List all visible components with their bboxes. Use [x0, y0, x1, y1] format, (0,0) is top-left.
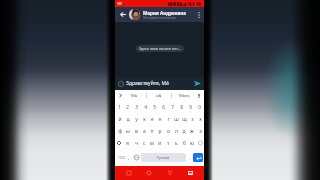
staticText: у: [135, 116, 138, 123]
button[interactable]: 9: [186, 101, 195, 113]
button[interactable]: Emoji: [117, 80, 124, 87]
staticText: й: [118, 116, 122, 123]
staticText: Последнее посещение: [143, 16, 176, 20]
staticText: м: [150, 140, 154, 147]
button[interactable]: я: [123, 137, 132, 149]
button[interactable]: з: [188, 113, 196, 125]
button[interactable]: 4: [141, 101, 150, 113]
staticText: 6: [162, 104, 165, 111]
button[interactable]: 3: [132, 101, 141, 113]
button[interactable]: 7: [168, 101, 177, 113]
button[interactable]: 0: [195, 101, 204, 113]
button[interactable]: Voice input: [196, 90, 202, 101]
staticText: з: [191, 116, 194, 123]
button[interactable]: 5: [150, 101, 159, 113]
staticText: я: [126, 140, 129, 147]
button[interactable]: ф: [115, 125, 124, 137]
button[interactable]: и: [156, 137, 164, 149]
button[interactable]: Ма: [123, 90, 146, 101]
staticText: а: [143, 128, 146, 135]
staticText: 2: [126, 104, 129, 111]
staticText: 4: [144, 104, 147, 111]
button[interactable]: 1: [115, 101, 123, 113]
button[interactable]: Send: [193, 79, 202, 88]
staticText: ы: [126, 128, 130, 135]
staticText: т: [167, 140, 170, 147]
button[interactable]: Shift: [115, 137, 123, 149]
button[interactable]: 6: [159, 101, 168, 113]
staticText: ф: [118, 128, 122, 135]
staticText: д: [182, 128, 186, 135]
button[interactable]: ж: [188, 125, 196, 137]
staticText: 7: [171, 104, 174, 111]
button[interactable]: Recent apps: [123, 167, 135, 179]
button[interactable]: о: [164, 125, 172, 137]
button[interactable]: иА: [147, 90, 171, 101]
button[interactable]: ц: [124, 113, 132, 125]
button[interactable]: п: [148, 125, 156, 137]
button[interactable]: ю: [188, 137, 196, 149]
staticText: ю: [190, 140, 194, 147]
button[interactable]: Enter: [193, 153, 203, 162]
button[interactable]: 2: [123, 101, 132, 113]
button[interactable]: Home: [143, 167, 155, 179]
staticText: о: [167, 128, 170, 135]
staticText: с: [143, 140, 146, 147]
button[interactable]: р: [156, 125, 164, 137]
button[interactable]: Backspace: [196, 137, 204, 149]
staticText: Здравствуйте, Мá: [126, 80, 193, 87]
button[interactable]: Маэо: [172, 90, 196, 101]
staticText: ?123: [118, 156, 125, 160]
button[interactable]: в: [132, 125, 140, 137]
button[interactable]: .: [187, 153, 193, 162]
staticText: Мария Андреевна: [143, 10, 186, 16]
staticText: п: [150, 128, 154, 135]
staticText: ч: [135, 140, 138, 147]
staticText: 1: [118, 104, 121, 111]
button[interactable]: Русский: [141, 153, 186, 162]
button[interactable]: б: [180, 137, 188, 149]
button[interactable]: г: [164, 113, 172, 125]
button[interactable]: т: [164, 137, 172, 149]
staticText: Здесь пока ничего нет...: [139, 46, 181, 51]
button[interactable]: у: [132, 113, 140, 125]
button[interactable]: а: [140, 125, 148, 137]
button[interactable]: More options: [195, 11, 203, 19]
button[interactable]: ч: [132, 137, 140, 149]
staticText: х: [199, 116, 202, 123]
button[interactable]: л: [172, 125, 180, 137]
button[interactable]: ь: [172, 137, 180, 149]
button[interactable]: Change language: [132, 153, 140, 162]
button[interactable]: с: [140, 137, 148, 149]
button[interactable]: щ: [180, 113, 188, 125]
button[interactable]: м: [148, 137, 156, 149]
button[interactable]: ?123: [116, 153, 126, 162]
staticText: щ: [182, 116, 187, 123]
staticText: Маэо: [179, 93, 190, 99]
button[interactable]: х: [196, 113, 204, 125]
button[interactable]: ш: [172, 113, 180, 125]
staticText: 3: [135, 104, 138, 111]
button[interactable]: Back: [118, 10, 127, 19]
button[interactable]: й: [115, 113, 124, 125]
staticText: е: [151, 116, 154, 123]
staticText: 8: [180, 104, 183, 111]
staticText: э: [199, 128, 202, 135]
button[interactable]: е: [148, 113, 156, 125]
button[interactable]: н: [156, 113, 164, 125]
staticText: б: [183, 140, 186, 147]
button[interactable]: Back: [164, 167, 176, 179]
button[interactable]: Expand suggestions: [117, 90, 123, 101]
button[interactable]: Profile photo: [129, 9, 140, 20]
button[interactable]: ы: [124, 125, 132, 137]
button[interactable]: ,: [126, 153, 132, 162]
button[interactable]: 8: [177, 101, 186, 113]
button[interactable]: к: [140, 113, 148, 125]
button[interactable]: д: [180, 125, 188, 137]
staticText: в: [135, 128, 138, 135]
staticText: Ма: [131, 93, 138, 99]
staticText: л: [175, 128, 178, 135]
staticText: к: [143, 116, 146, 123]
button[interactable]: Hide keyboard: [184, 167, 196, 179]
button[interactable]: э: [196, 125, 204, 137]
